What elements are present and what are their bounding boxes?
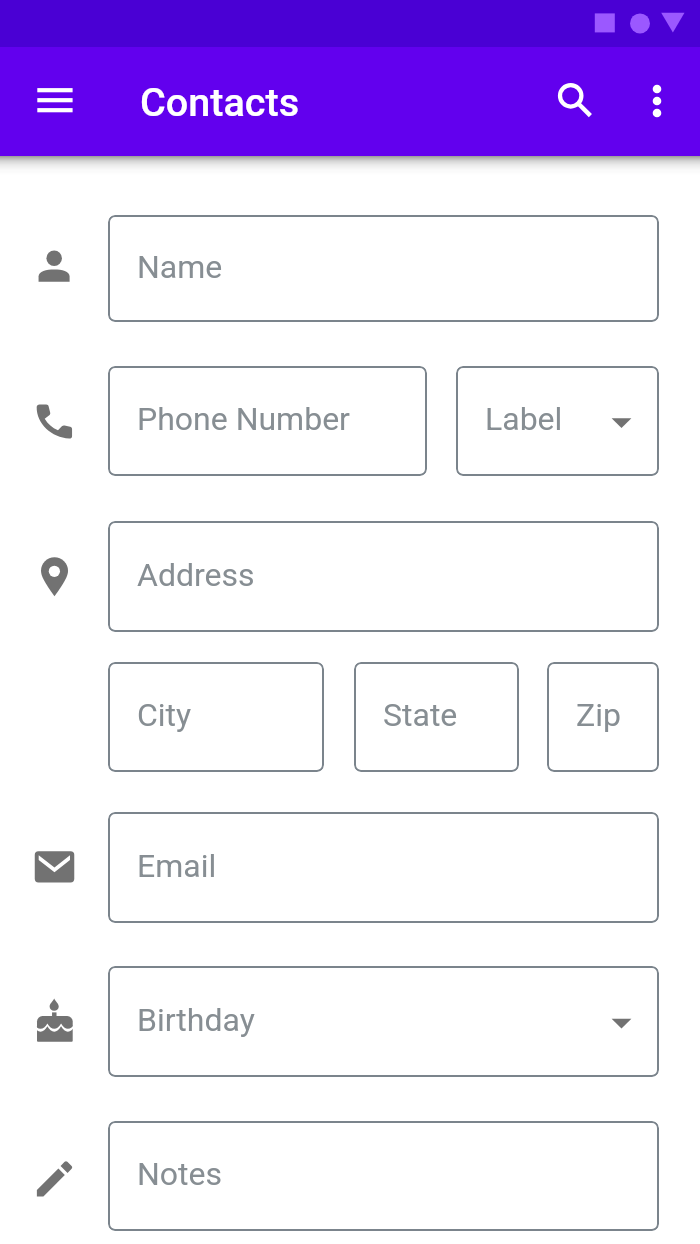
button[interactable]: Search — [525, 49, 617, 141]
staticText: Address — [137, 556, 255, 594]
staticText: Contacts — [140, 79, 300, 125]
staticText: Email — [137, 847, 217, 885]
staticText: Phone Number — [137, 400, 350, 438]
staticText: State — [383, 696, 458, 734]
staticText: City — [137, 696, 192, 734]
button[interactable] — [10, 978, 98, 1066]
button[interactable]: City — [108, 662, 324, 772]
staticText: Label — [485, 400, 563, 438]
button[interactable] — [10, 224, 98, 312]
button[interactable] — [10, 533, 98, 621]
button[interactable]: State — [354, 662, 519, 772]
button[interactable]: Navigation menu — [10, 61, 100, 151]
button[interactable]: More options — [612, 54, 700, 142]
button[interactable]: Zip — [547, 662, 659, 772]
button[interactable]: Address — [108, 521, 659, 632]
staticText: Name — [137, 248, 223, 286]
button[interactable]: Label — [456, 366, 659, 476]
staticText: Birthday — [137, 1001, 255, 1039]
button[interactable]: Birthday — [108, 966, 659, 1077]
button[interactable]: Notes — [108, 1121, 659, 1231]
staticText: Notes — [137, 1155, 223, 1193]
staticText: Zip — [576, 696, 621, 734]
button[interactable] — [10, 1132, 98, 1220]
button[interactable] — [10, 377, 98, 465]
button[interactable]: Email — [108, 812, 659, 923]
button[interactable] — [10, 824, 98, 912]
button[interactable]: Phone Number — [108, 366, 427, 476]
button[interactable]: Name — [108, 215, 659, 322]
